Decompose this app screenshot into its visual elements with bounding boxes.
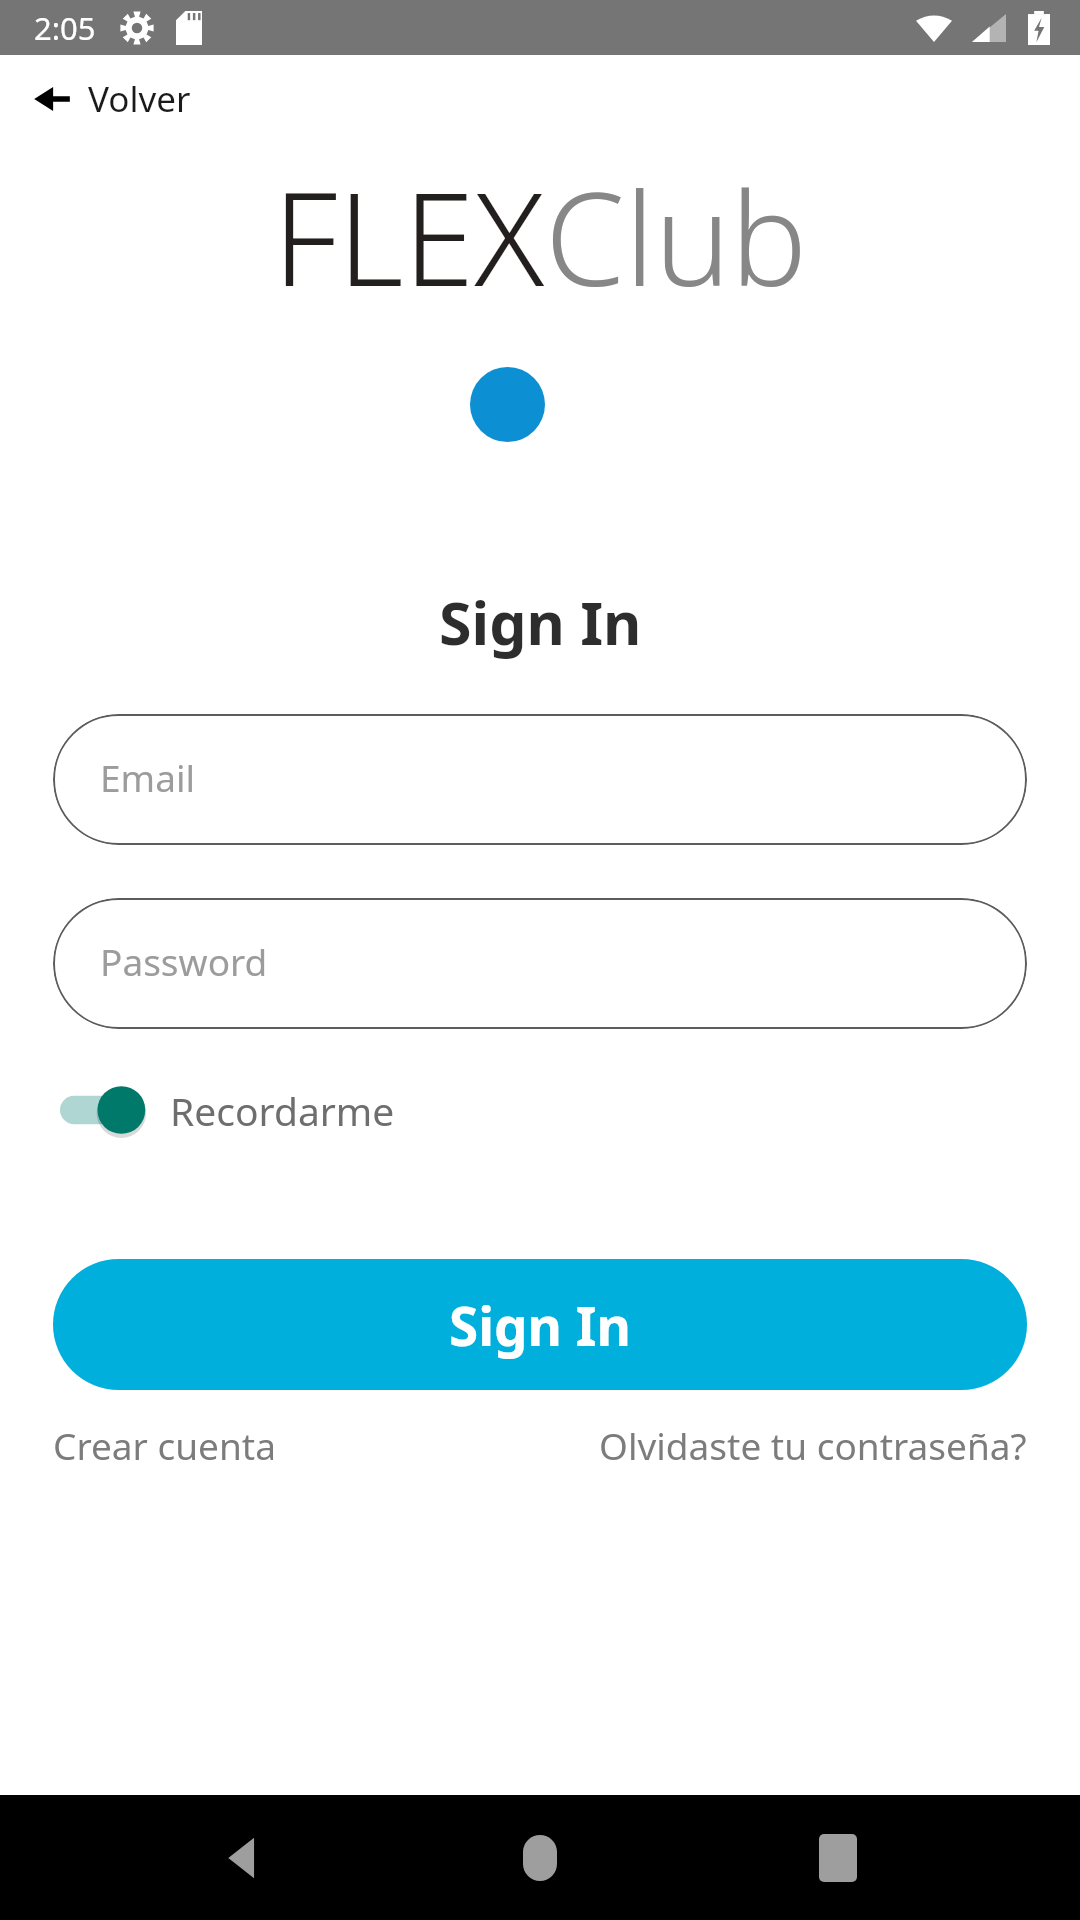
button[interactable]: Back [188,1803,298,1913]
staticText: Recordarme [170,1084,395,1137]
staticText: Club [545,149,808,323]
staticText: Sign In [449,1289,631,1361]
staticText: 2:05 [34,7,96,49]
button[interactable]: Password [53,898,1027,1029]
staticText: Crear cuenta [53,1420,276,1470]
staticText: Sign In [439,582,642,662]
staticText: FLEX [273,149,545,323]
button[interactable]: Recordarme [60,1073,415,1147]
button[interactable]: Volver [32,69,209,129]
button[interactable]: Sign In [53,1259,1027,1390]
button[interactable]: Home [485,1803,595,1913]
other: Volver [32,77,76,121]
button[interactable]: Email [53,714,1027,845]
staticText: Olvidaste tu contraseña? [599,1420,1027,1470]
staticText: Password [100,936,268,986]
staticText: Volver [88,75,191,123]
button[interactable]: Recent apps [783,1803,893,1913]
button[interactable]: Olvidaste tu contraseña? [599,1412,1027,1478]
button[interactable]: Crear cuenta [53,1412,276,1478]
staticText: Email [100,752,196,802]
